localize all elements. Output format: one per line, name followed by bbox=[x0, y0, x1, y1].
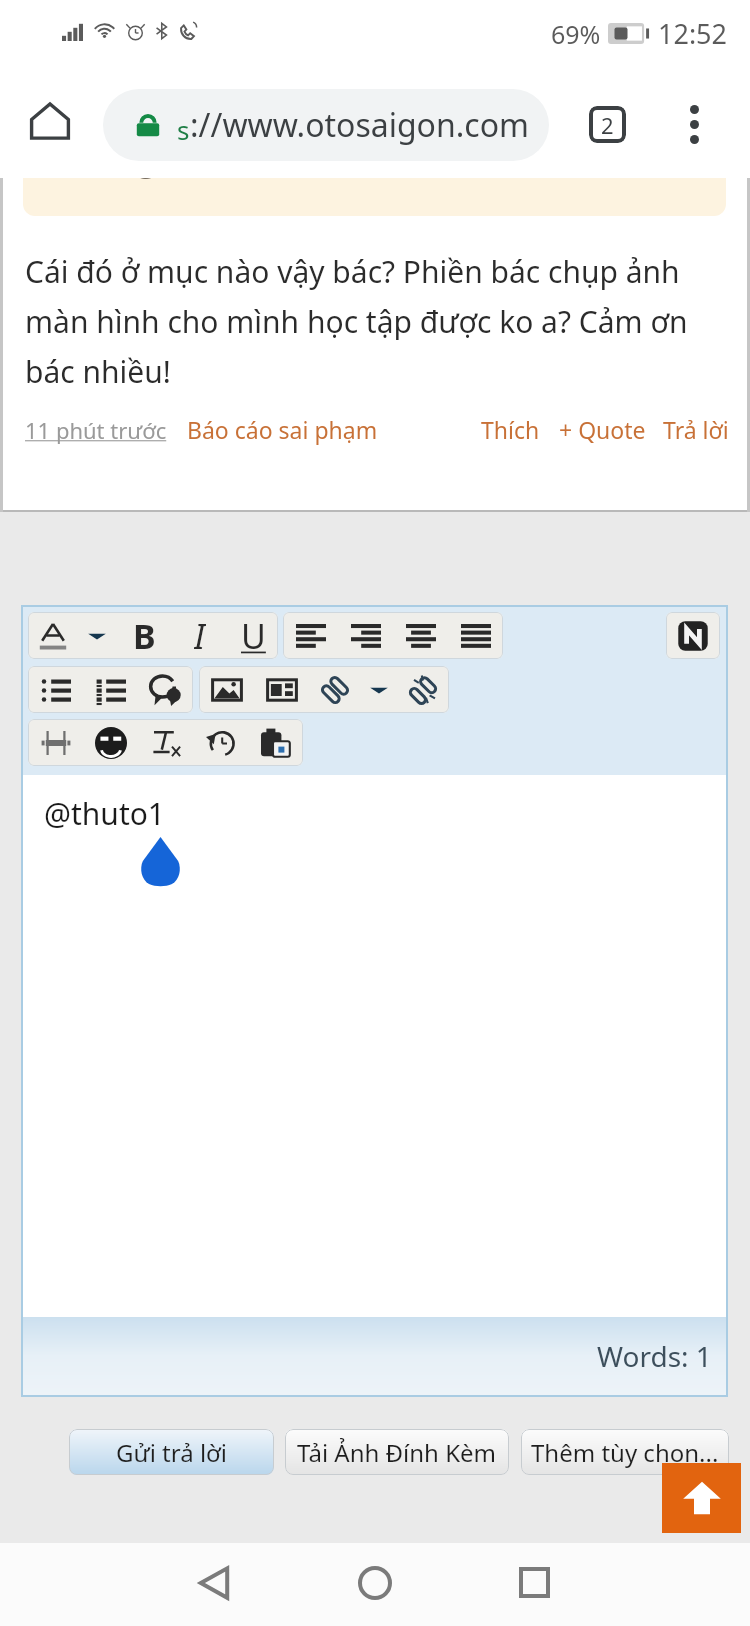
button[interactable]: Insert video bbox=[254, 667, 309, 712]
button[interactable]: Thích bbox=[481, 414, 540, 445]
button[interactable]: Báo cáo sai phạm bbox=[187, 414, 378, 445]
staticText: Tải Ảnh Đính Kèm bbox=[297, 1436, 497, 1469]
button[interactable]: Recent apps bbox=[474, 1543, 594, 1626]
staticText: Thêm tùy chọn... bbox=[531, 1436, 719, 1469]
staticText: Đã có @thuto1 bbox=[49, 178, 250, 184]
button[interactable]: Paste bbox=[248, 720, 303, 765]
button[interactable]: Insert horizontal rule bbox=[28, 720, 83, 765]
button[interactable]: Trả lời bbox=[663, 414, 729, 445]
button[interactable]: Font colour menu bbox=[78, 613, 116, 658]
button[interactable]: Align left bbox=[283, 613, 338, 658]
button[interactable]: Scroll to top bbox=[662, 1463, 741, 1533]
staticText: ://www.otosaigon.com bbox=[190, 103, 529, 147]
button[interactable]: Tabs bbox=[575, 92, 639, 156]
button[interactable]: Home bbox=[315, 1543, 435, 1626]
button[interactable]: Gửi trả lời bbox=[69, 1429, 274, 1475]
button[interactable]: Insert link bbox=[309, 667, 361, 712]
button[interactable]: Bold bbox=[116, 613, 172, 658]
button[interactable]: s bbox=[103, 89, 549, 161]
button[interactable]: Align centre bbox=[393, 613, 448, 658]
button[interactable]: 11 phút trước bbox=[25, 415, 167, 445]
button[interactable]: Undo bbox=[193, 720, 248, 765]
button[interactable]: Italic bbox=[172, 613, 228, 658]
button[interactable]: Editor mode bbox=[666, 613, 720, 658]
button[interactable]: @thuto1 bbox=[23, 775, 726, 1317]
button[interactable]: Quote bbox=[138, 667, 193, 712]
button[interactable]: Clear formatting bbox=[138, 720, 193, 765]
button[interactable]: Align right bbox=[338, 613, 393, 658]
button[interactable]: Numbered list bbox=[83, 667, 138, 712]
staticText: B bbox=[133, 613, 156, 658]
staticText: U bbox=[241, 613, 266, 658]
button[interactable]: Insert image bbox=[199, 667, 254, 712]
button[interactable]: Back bbox=[154, 1543, 274, 1626]
button[interactable]: + Quote bbox=[559, 414, 646, 445]
button[interactable]: Remove link bbox=[397, 667, 449, 712]
staticText: I bbox=[194, 613, 206, 658]
staticText: Words: 1 bbox=[597, 1337, 712, 1375]
staticText: 69% bbox=[551, 17, 601, 51]
button[interactable]: Link menu bbox=[361, 667, 397, 712]
button[interactable]: Home bbox=[20, 91, 80, 151]
staticText: 12:52 bbox=[658, 15, 728, 52]
button[interactable]: Tải Ảnh Đính Kèm bbox=[285, 1429, 509, 1475]
button[interactable]: Bullet list bbox=[28, 667, 83, 712]
button[interactable]: Justify bbox=[448, 613, 503, 658]
staticText: Gửi trả lời bbox=[116, 1436, 228, 1469]
button[interactable]: Thêm tùy chọn... bbox=[521, 1429, 729, 1475]
staticText: 2 bbox=[601, 110, 614, 140]
staticText: s bbox=[177, 112, 190, 147]
staticText: @thuto1 bbox=[44, 793, 166, 834]
button[interactable]: Underline bbox=[228, 613, 278, 658]
button[interactable]: Font colour bbox=[28, 613, 78, 658]
staticText: Cái đó ở mục nào vậy bác? Phiền bác chụp… bbox=[25, 251, 715, 392]
button[interactable]: More options bbox=[662, 92, 726, 156]
button[interactable]: Insert emoji bbox=[83, 720, 138, 765]
